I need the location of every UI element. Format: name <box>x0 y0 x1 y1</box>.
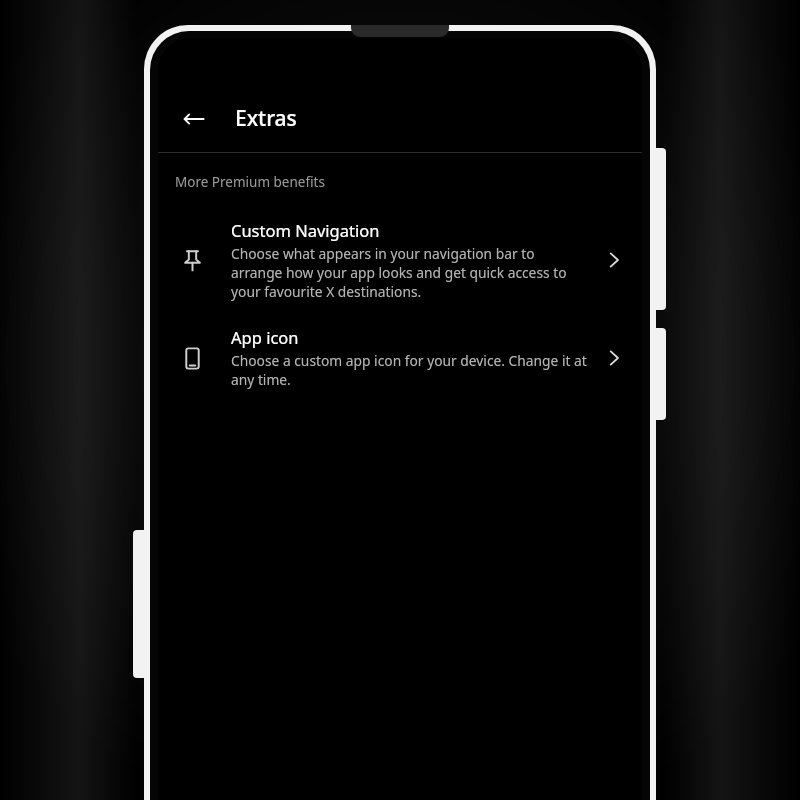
staticText: Choose what appears in your navigation b… <box>231 244 588 301</box>
button[interactable]: Back <box>172 97 216 141</box>
staticText: More Premium benefits <box>175 173 325 191</box>
staticText: Extras <box>235 104 297 133</box>
button[interactable]: App icon <box>158 320 642 395</box>
button[interactable]: Custom Navigation <box>158 213 642 307</box>
staticText: Custom Navigation <box>231 219 380 241</box>
staticText: App icon <box>231 326 299 348</box>
staticText: Choose a custom app icon for your device… <box>231 351 588 389</box>
